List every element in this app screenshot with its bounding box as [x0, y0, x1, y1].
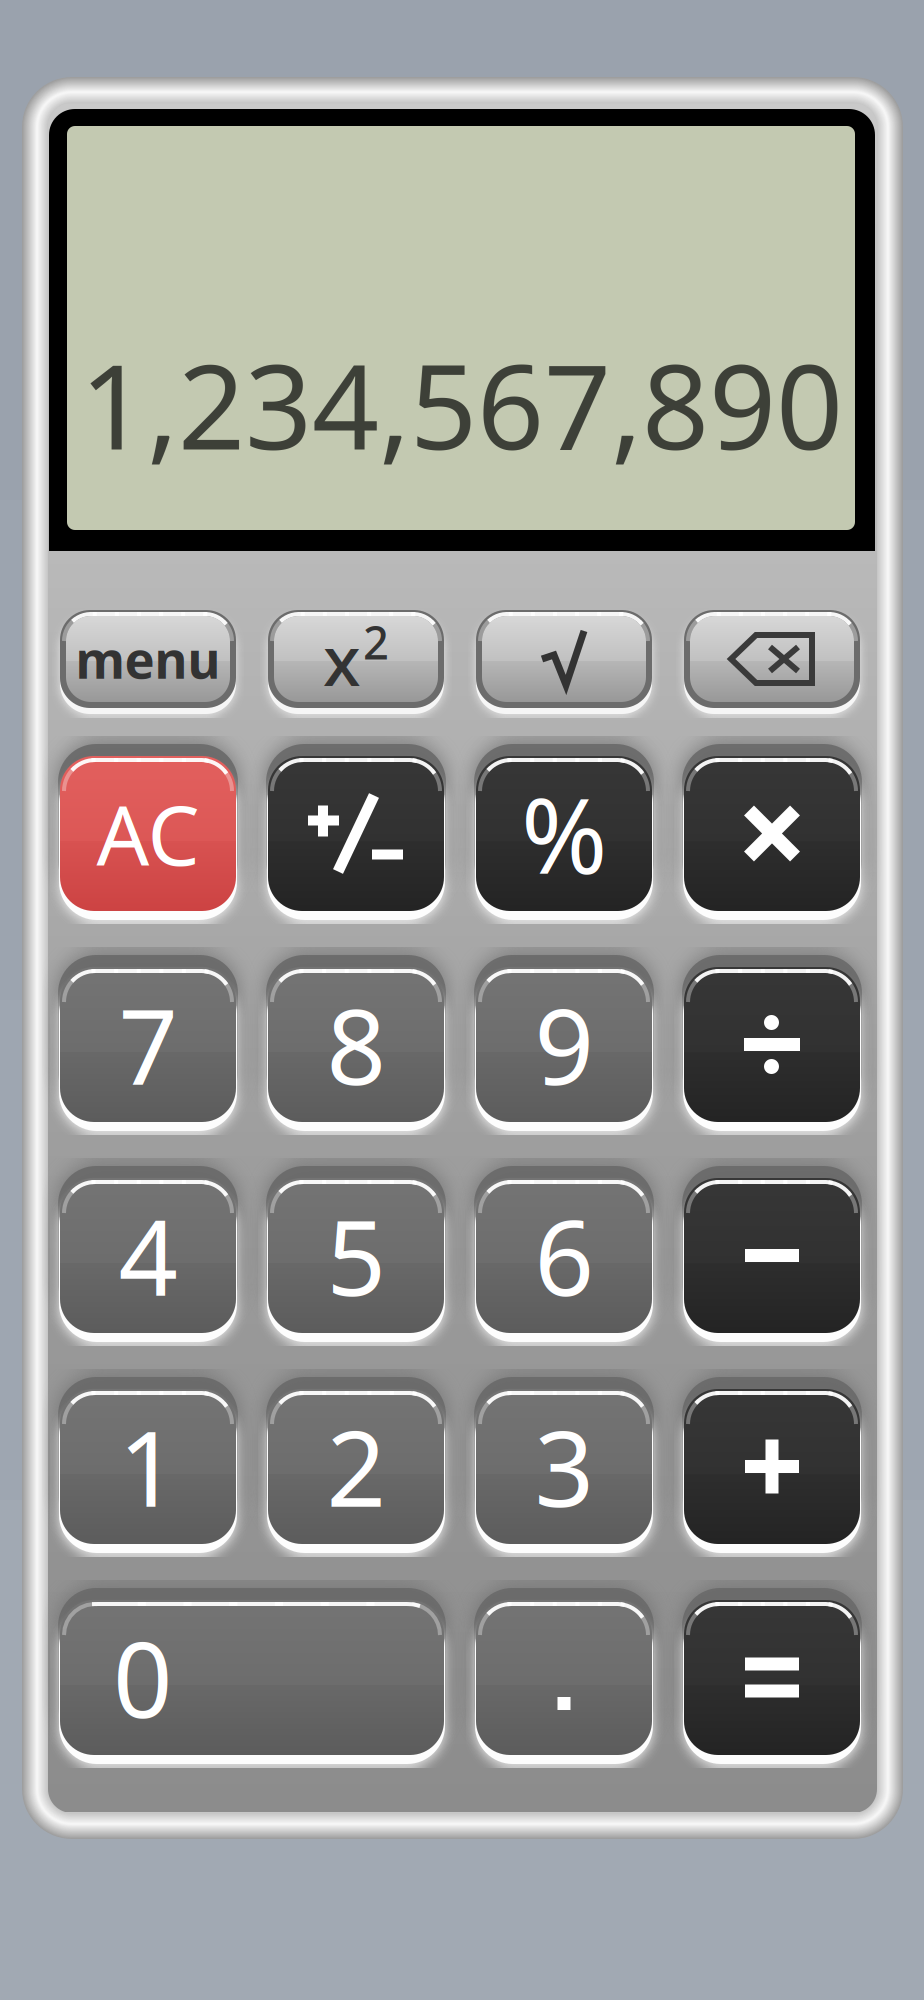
- button[interactable]: 5: [268, 1178, 444, 1333]
- button[interactable]: 2: [268, 1389, 444, 1544]
- button[interactable]: [684, 756, 860, 911]
- button[interactable]: AC: [60, 756, 236, 911]
- staticText: x: [323, 613, 361, 705]
- button[interactable]: 6: [476, 1178, 652, 1333]
- button[interactable]: 9: [476, 967, 652, 1122]
- button[interactable]: 7: [60, 967, 236, 1122]
- staticText: menu: [75, 625, 220, 693]
- staticText: 8: [326, 975, 385, 1113]
- staticText: 2: [326, 1397, 385, 1535]
- staticText: 9: [534, 975, 593, 1113]
- staticText: 7: [118, 975, 177, 1113]
- button[interactable]: %: [476, 756, 652, 911]
- button[interactable]: 4: [60, 1178, 236, 1333]
- button[interactable]: [684, 1178, 860, 1333]
- button[interactable]: 1: [60, 1389, 236, 1544]
- button[interactable]: x: [268, 610, 444, 708]
- button[interactable]: 8: [268, 967, 444, 1122]
- button[interactable]: 3: [476, 1389, 652, 1544]
- button[interactable]: 0: [60, 1600, 444, 1755]
- staticText: 1,234,567,890: [80, 326, 843, 482]
- staticText: AC: [96, 779, 199, 888]
- staticText: 6: [534, 1186, 593, 1324]
- staticText: 5: [326, 1186, 385, 1324]
- button[interactable]: [476, 610, 652, 708]
- staticText: 1: [118, 1397, 177, 1535]
- button[interactable]: [684, 1600, 860, 1755]
- staticText: %: [521, 764, 607, 902]
- button[interactable]: menu: [60, 610, 236, 708]
- button[interactable]: [268, 756, 444, 911]
- staticText: 3: [534, 1397, 593, 1535]
- button[interactable]: [476, 1600, 652, 1755]
- button[interactable]: [684, 610, 860, 708]
- button[interactable]: [684, 1389, 860, 1544]
- staticText: 4: [118, 1186, 177, 1324]
- button[interactable]: [684, 967, 860, 1122]
- staticText: 0: [113, 1608, 172, 1746]
- staticText: 2: [363, 612, 389, 672]
